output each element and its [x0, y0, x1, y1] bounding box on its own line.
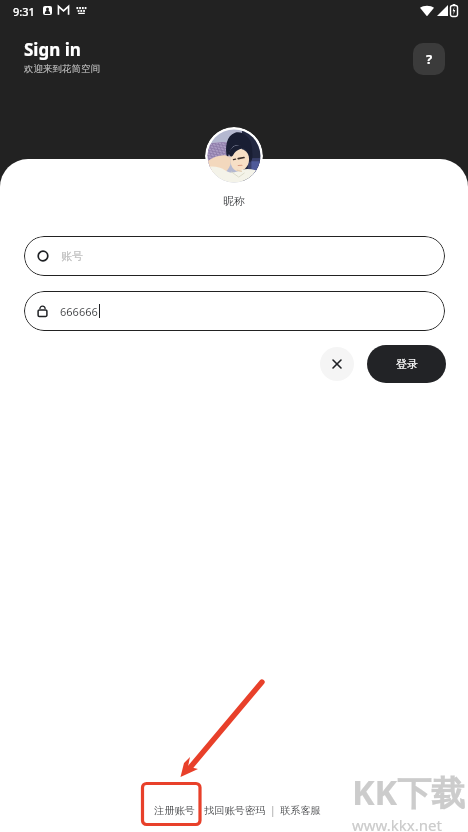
- staticText: KK下载: [352, 769, 466, 815]
- staticText: ?: [426, 50, 433, 68]
- button[interactable]: 登录: [367, 345, 446, 383]
- button[interactable]: 账号: [24, 236, 445, 276]
- staticText: 账号: [61, 249, 83, 263]
- staticText: 找回账号密玛: [204, 804, 266, 817]
- button[interactable]: Profile photo: [205, 127, 263, 185]
- staticText: 9:31: [13, 4, 35, 19]
- button[interactable]: 找回账号密玛: [204, 804, 266, 817]
- staticText: 昵称: [0, 194, 468, 208]
- staticText: Sign in: [24, 38, 81, 61]
- staticText: 联系客服: [280, 804, 321, 817]
- button[interactable]: 注册账号: [154, 804, 195, 817]
- staticText: 注册账号: [154, 804, 195, 817]
- button[interactable]: 666666: [24, 291, 445, 331]
- staticText: |: [270, 803, 276, 817]
- button[interactable]: Clear: [320, 347, 354, 381]
- staticText: 登录: [396, 357, 418, 371]
- staticText: www.kkx.net: [352, 815, 442, 832]
- button[interactable]: 联系客服: [280, 804, 321, 817]
- button[interactable]: Help: [413, 43, 445, 75]
- staticText: 欢迎来到花简空间: [24, 63, 100, 75]
- staticText: 666666: [60, 304, 98, 319]
